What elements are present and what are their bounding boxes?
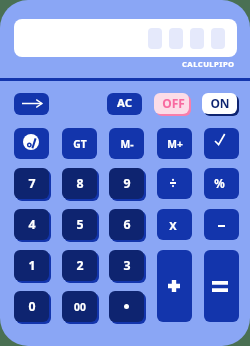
button[interactable]: 9: [109, 168, 144, 199]
staticText: 9: [123, 175, 131, 192]
button[interactable]: 3: [109, 250, 144, 281]
button[interactable]: Equals: [204, 250, 239, 322]
button[interactable]: 7: [14, 168, 49, 199]
button[interactable]: Minus: [204, 209, 239, 240]
staticText: AC: [117, 95, 132, 111]
staticText: 2: [76, 257, 84, 274]
staticText: 1: [28, 257, 36, 274]
staticText: 8: [76, 175, 84, 192]
staticText: OFF: [162, 95, 185, 111]
button[interactable]: Divide: [157, 168, 192, 199]
button[interactable]: Decimal point: [109, 291, 144, 322]
button[interactable]: X: [157, 209, 192, 240]
button[interactable]: 8: [62, 168, 97, 199]
staticText: X: [169, 218, 177, 233]
button[interactable]: 0: [14, 291, 49, 322]
staticText: M-: [120, 137, 134, 151]
button[interactable]: OFF: [154, 93, 189, 114]
button[interactable]: %: [204, 168, 239, 199]
button[interactable]: Percent: [14, 128, 49, 159]
button[interactable]: M-: [109, 128, 144, 159]
staticText: M+: [167, 137, 183, 151]
staticText: 7: [28, 175, 36, 192]
staticText: 0: [28, 298, 36, 315]
button[interactable]: Backspace: [14, 93, 49, 115]
staticText: 6: [123, 216, 131, 233]
button[interactable]: 00: [62, 291, 97, 322]
staticText: CALCULPIPO: [182, 59, 235, 69]
button[interactable]: GT: [62, 128, 97, 159]
button[interactable]: M+: [157, 128, 192, 159]
staticText: 00: [74, 300, 86, 314]
staticText: 4: [28, 216, 36, 233]
button[interactable]: Plus: [157, 250, 192, 322]
button[interactable]: 4: [14, 209, 49, 240]
staticText: ON: [210, 95, 230, 111]
button[interactable]: AC: [107, 93, 142, 115]
button[interactable]: 1: [14, 250, 49, 281]
button[interactable]: 2: [62, 250, 97, 281]
staticText: GT: [73, 137, 87, 151]
button[interactable]: 5: [62, 209, 97, 240]
staticText: %: [214, 176, 225, 192]
staticText: 3: [123, 257, 131, 274]
button[interactable]: ON: [202, 93, 237, 114]
button[interactable]: 6: [109, 209, 144, 240]
staticText: 5: [76, 216, 84, 233]
button[interactable]: Square root: [204, 128, 239, 159]
